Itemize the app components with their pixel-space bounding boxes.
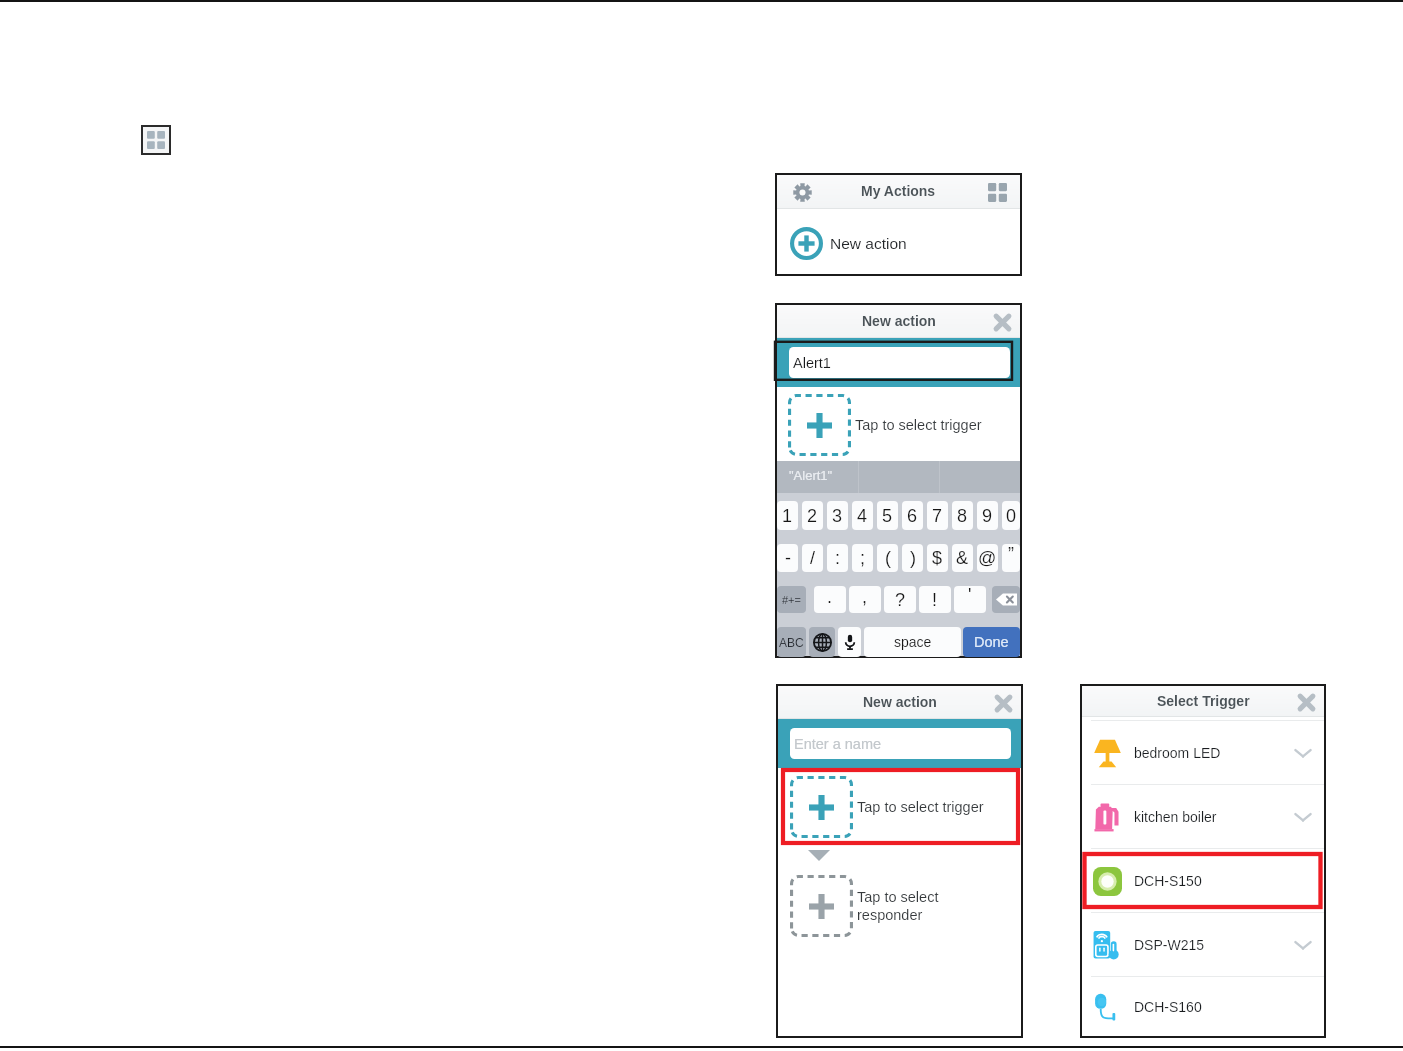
staticText: 5 [882, 506, 893, 526]
staticText: Tap to select trigger [857, 799, 984, 815]
button[interactable]: Enter a name [790, 728, 1011, 759]
button[interactable]: New action [777, 211, 1020, 276]
staticText: @ [978, 548, 997, 568]
button[interactable]: @ [977, 544, 998, 572]
staticText: 0 [1006, 506, 1017, 526]
staticText: Tap to select trigger [855, 417, 982, 433]
staticText: 7 [932, 506, 943, 526]
staticText: - [785, 548, 791, 568]
button[interactable]: 4 [852, 501, 873, 530]
staticText: 9 [982, 506, 993, 526]
staticText: ” [1008, 544, 1014, 564]
staticText: "Alert1" [789, 468, 833, 483]
button[interactable]: Close [991, 691, 1015, 715]
button[interactable]: 8 [952, 501, 973, 530]
button[interactable]: ) [902, 544, 923, 572]
staticText: ' [968, 586, 972, 605]
button[interactable]: ' [954, 586, 986, 613]
staticText: & [956, 548, 969, 568]
staticText: Enter a name [794, 736, 882, 752]
staticText: DCH-S160 [1134, 999, 1294, 1015]
button[interactable]: Settings [790, 180, 814, 204]
staticText: space [894, 634, 932, 650]
button[interactable]: 6 [902, 501, 923, 530]
button[interactable]: 2 [802, 501, 823, 530]
staticText: ABC [779, 636, 804, 649]
staticText: ; [860, 548, 866, 568]
staticText: , [862, 587, 868, 607]
staticText: Done [974, 634, 1009, 650]
staticText: 4 [857, 506, 868, 526]
staticText: kitchen boiler [1134, 809, 1294, 825]
button[interactable]: Grid view icon [143, 127, 169, 153]
button[interactable]: Close [1294, 690, 1318, 714]
button[interactable]: / [802, 544, 823, 572]
button[interactable]: ( [877, 544, 898, 572]
staticText: New action [862, 313, 936, 329]
button[interactable]: Done [963, 627, 1020, 657]
button[interactable]: Grid view [985, 180, 1009, 204]
button[interactable]: 1 [777, 501, 798, 530]
button[interactable]: Close [990, 310, 1014, 334]
staticText: 6 [907, 506, 918, 526]
staticText: ) [910, 548, 916, 568]
button[interactable]: kitchen boiler [1082, 785, 1324, 848]
button[interactable]: ” [1002, 544, 1020, 572]
button[interactable]: : [827, 544, 848, 572]
staticText: ? [895, 590, 906, 610]
button[interactable]: Tap to select responder [790, 875, 1020, 937]
button[interactable]: ; [852, 544, 873, 572]
staticText: New action [863, 694, 937, 710]
button[interactable]: DSP-W215 [1082, 913, 1324, 976]
staticText: bedroom LED [1134, 745, 1294, 761]
staticText: DCH-S150 [1134, 873, 1294, 889]
staticText: Alert1 [793, 355, 831, 371]
staticText: 1 [782, 506, 793, 526]
button[interactable]: 0 [1002, 501, 1020, 530]
button[interactable]: 7 [927, 501, 948, 530]
staticText: DSP-W215 [1134, 937, 1294, 953]
staticText: 2 [807, 506, 818, 526]
staticText: #+= [782, 594, 801, 606]
staticText: ! [932, 590, 938, 610]
button[interactable]: Alert1 [789, 347, 1010, 378]
button[interactable] [809, 627, 835, 657]
button[interactable]: Tap to select trigger [781, 768, 1020, 845]
button[interactable]: - [777, 544, 798, 572]
button[interactable]: DCH-S160 [1082, 977, 1324, 1036]
staticText: 3 [832, 506, 843, 526]
button[interactable]: 5 [877, 501, 898, 530]
button[interactable] [992, 586, 1020, 613]
staticText: ( [885, 548, 891, 568]
staticText: Select Trigger [1157, 693, 1250, 709]
button[interactable]: . [814, 586, 846, 613]
staticText: New action [830, 235, 907, 252]
button[interactable]: , [849, 586, 881, 613]
button[interactable] [838, 627, 861, 657]
staticText: Tap to select responder [857, 889, 939, 923]
staticText: My Actions [861, 183, 936, 199]
button[interactable]: space [864, 627, 961, 657]
button[interactable]: ! [919, 586, 951, 613]
staticText: $ [932, 548, 943, 568]
button[interactable]: 3 [827, 501, 848, 530]
button[interactable]: ABC [777, 627, 806, 657]
staticText: / [810, 548, 816, 568]
button[interactable]: Tap to select trigger [788, 394, 1008, 456]
button[interactable]: bedroom LED [1082, 721, 1324, 784]
button[interactable]: #+= [777, 586, 806, 613]
button[interactable]: ? [884, 586, 916, 613]
staticText: : [835, 548, 841, 568]
staticText: . [827, 587, 833, 607]
button[interactable]: 9 [977, 501, 998, 530]
button[interactable]: DCH-S150 [1082, 849, 1324, 912]
staticText: 8 [957, 506, 968, 526]
button[interactable]: & [952, 544, 973, 572]
button[interactable]: $ [927, 544, 948, 572]
